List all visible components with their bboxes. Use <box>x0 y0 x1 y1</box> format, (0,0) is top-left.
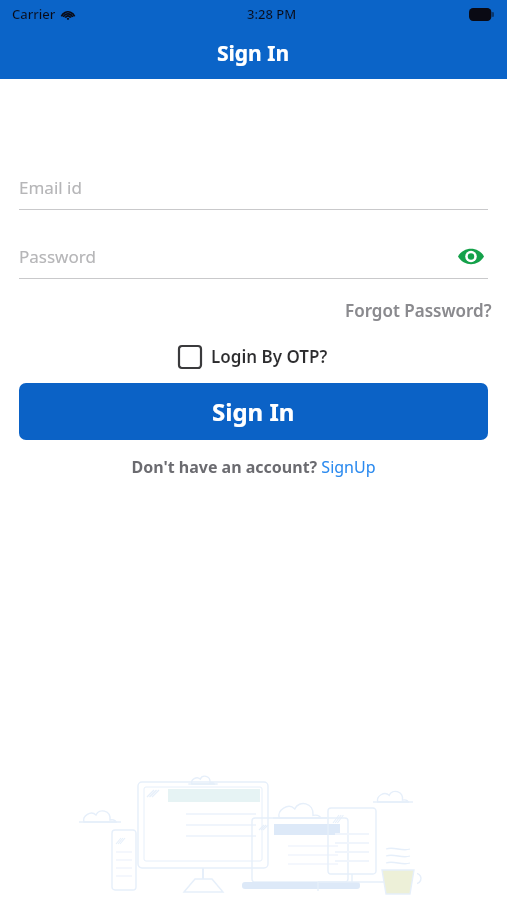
button[interactable]: Password <box>19 234 488 278</box>
staticText: Sign In <box>217 39 290 68</box>
staticText: Sign In <box>212 395 295 428</box>
staticText: Don't have an account? SignUp <box>131 456 376 478</box>
staticText: Carrier <box>12 5 56 23</box>
staticText: Forgot Password? <box>345 299 492 322</box>
button[interactable]: Login By OTP? <box>175 341 332 372</box>
staticText: Password <box>19 245 96 268</box>
staticText: 3:28 PM <box>247 5 297 23</box>
staticText: Email id <box>19 176 82 199</box>
button[interactable]: Sign In <box>19 383 488 440</box>
button[interactable]: Forgot Password? <box>343 296 494 325</box>
button[interactable]: Show password <box>454 239 488 273</box>
button[interactable]: Don't have an account? SignUp <box>125 453 382 481</box>
staticText: Login By OTP? <box>211 345 328 368</box>
button[interactable]: Email id <box>19 165 488 209</box>
